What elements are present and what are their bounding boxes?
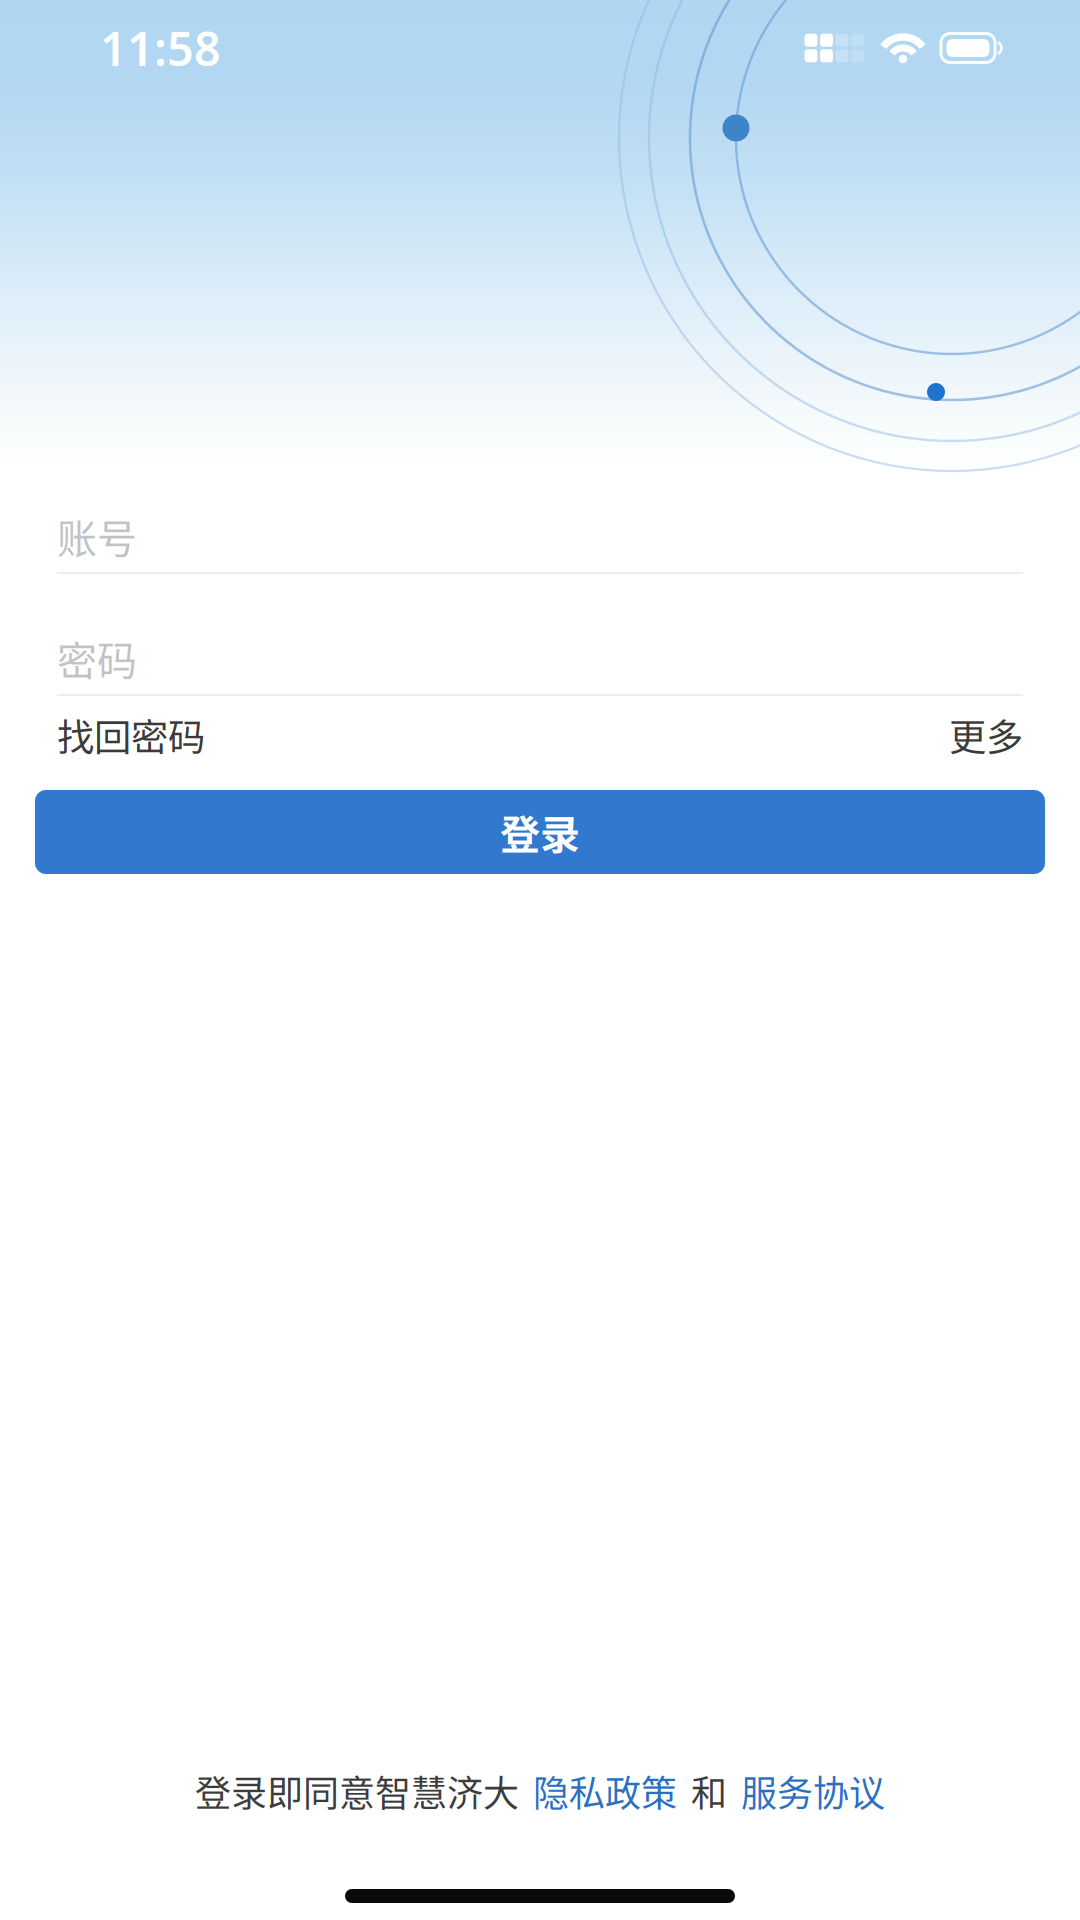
button[interactable]: 找回密码 [57, 716, 205, 754]
staticText: 登录 [500, 803, 580, 861]
staticText: 账号 [57, 507, 137, 565]
button[interactable]: 隐私政策 [533, 1765, 677, 1817]
staticText: 更多 [949, 708, 1023, 762]
button[interactable]: 密码 [57, 574, 1023, 696]
button[interactable]: 服务协议 [741, 1765, 885, 1817]
button[interactable]: 更多 [949, 716, 1023, 754]
staticText: 登录即同意智慧济大 [195, 1765, 519, 1817]
button[interactable]: 登录 [35, 790, 1045, 874]
staticText: 隐私政策 [533, 1765, 677, 1817]
staticText: 密码 [57, 629, 137, 687]
staticText: 找回密码 [57, 708, 205, 762]
staticText: 11:58 [100, 17, 221, 79]
staticText: 服务协议 [741, 1765, 885, 1817]
staticText: 和 [691, 1765, 727, 1817]
button[interactable]: 账号 [57, 470, 1023, 574]
